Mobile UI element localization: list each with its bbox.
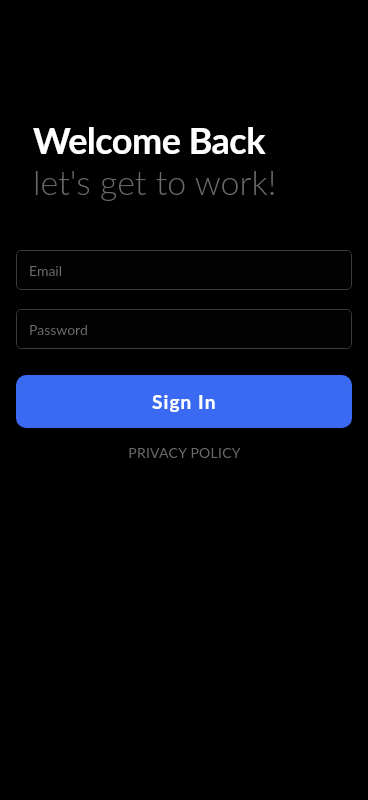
button[interactable]: Sign In xyxy=(16,375,352,428)
staticText: Sign In xyxy=(152,390,217,413)
staticText: Welcome Back xyxy=(33,118,265,161)
button[interactable]: PRIVACY POLICY xyxy=(122,442,247,463)
staticText: Password xyxy=(29,321,88,338)
staticText: PRIVACY POLICY xyxy=(128,444,241,461)
staticText: let's get to work! xyxy=(33,161,277,202)
button[interactable]: Email xyxy=(16,250,352,290)
staticText: Email xyxy=(29,262,63,279)
button[interactable]: Password xyxy=(16,309,352,349)
